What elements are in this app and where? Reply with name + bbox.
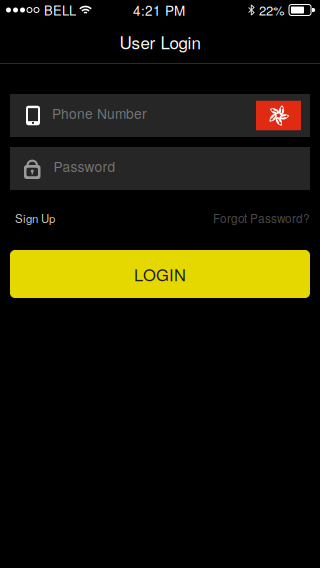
button[interactable]: Phone Number xyxy=(10,94,310,137)
staticText: Phone Number xyxy=(52,103,147,123)
staticText: Password xyxy=(53,156,115,176)
staticText: Forgot Password? xyxy=(213,210,310,226)
button[interactable]: Sign Up xyxy=(15,210,55,226)
staticText: 22% xyxy=(259,1,285,19)
staticText: Sign Up xyxy=(15,210,55,226)
staticText: 4:21 PM xyxy=(133,0,185,20)
staticText: LOGIN xyxy=(134,262,186,286)
staticText: User Login xyxy=(119,30,200,54)
staticText: BELL xyxy=(44,1,76,19)
button[interactable]: LOGIN xyxy=(10,250,310,298)
button[interactable]: Forgot Password? xyxy=(213,210,310,226)
button[interactable]: Password xyxy=(10,147,310,190)
